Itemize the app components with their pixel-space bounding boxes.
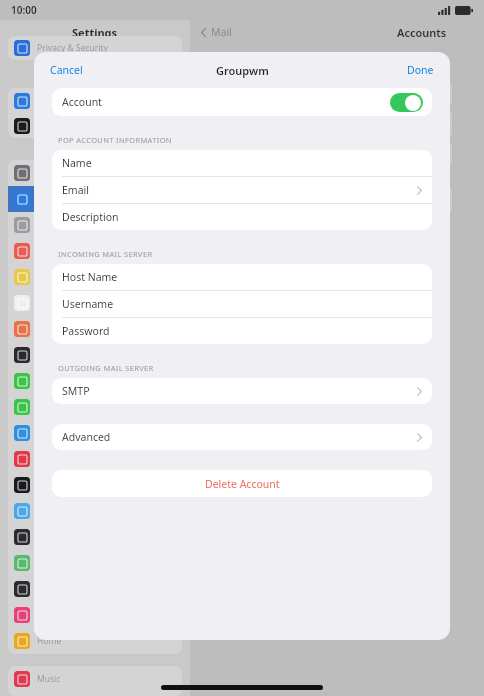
button[interactable]: Passwords [8, 160, 182, 186]
button[interactable]: Email [52, 177, 432, 203]
staticText: Settings [72, 25, 118, 40]
button[interactable]: Advanced [52, 424, 432, 450]
button[interactable]: App Store [8, 88, 182, 114]
button[interactable]: Back to Mail [201, 25, 232, 39]
button[interactable]: Calendar [8, 238, 182, 264]
button[interactable]: Name [52, 150, 432, 176]
button[interactable]: Maps [8, 550, 182, 576]
staticText: 10:00 [11, 3, 37, 17]
button[interactable]: Delete Account [52, 470, 432, 497]
button[interactable]: Stocks [8, 472, 182, 498]
staticText: Mail [211, 25, 232, 39]
staticText: Privacy & Security [37, 42, 108, 54]
button[interactable]: Account row [200, 110, 452, 138]
staticText: Reminders [37, 297, 81, 309]
staticText: Username [62, 297, 114, 311]
staticText: Groupwm [216, 63, 269, 78]
staticText: Messages [37, 401, 77, 413]
staticText: Accounts [397, 25, 447, 40]
staticText: Notes [37, 271, 61, 283]
button[interactable]: Safari [8, 420, 182, 446]
staticText: Stocks [37, 479, 63, 491]
staticText: POP ACCOUNT INFORMATION [58, 135, 172, 145]
button[interactable]: Account row [200, 80, 452, 108]
staticText: Freeform [37, 323, 74, 335]
staticText: Home [37, 635, 62, 647]
staticText: Phone [37, 375, 63, 387]
button[interactable]: SMTP [52, 378, 432, 404]
button[interactable]: Notes [8, 264, 182, 290]
button[interactable]: Contacts [8, 212, 182, 238]
button[interactable]: Shortcuts [8, 576, 182, 602]
button[interactable]: Voice Memos [8, 342, 182, 368]
staticText: Description [62, 210, 119, 224]
button[interactable]: Username [52, 291, 432, 317]
staticText: Safari [37, 427, 60, 439]
staticText: Music [37, 673, 61, 685]
staticText: Mail [37, 193, 54, 205]
button[interactable]: Weather [8, 498, 182, 524]
button[interactable]: Reminders [8, 290, 182, 316]
button[interactable]: Done [401, 58, 440, 82]
button[interactable]: Music [8, 666, 182, 692]
button[interactable]: Privacy & Security [8, 36, 182, 60]
staticText: Host Name [62, 270, 118, 284]
staticText: Delete Account [205, 477, 280, 491]
button[interactable]: Home [8, 628, 182, 654]
button[interactable]: Account row [200, 186, 452, 214]
staticText: Advanced [62, 430, 111, 444]
button[interactable]: Messages [8, 394, 182, 420]
button[interactable]: Mail [8, 186, 182, 212]
button[interactable]: Translate [8, 524, 182, 550]
button[interactable]: Cancel [44, 58, 89, 82]
button[interactable]: Password [52, 318, 432, 344]
button[interactable]: Wallet [8, 114, 182, 138]
staticText: Name [62, 156, 92, 170]
staticText: Account [62, 95, 102, 109]
staticText: INCOMING MAIL SERVER [58, 249, 153, 259]
staticText: Email [62, 183, 89, 197]
button[interactable]: Freeform [8, 316, 182, 342]
staticText: Calendar [37, 245, 73, 257]
staticText: SMTP [62, 384, 90, 398]
button[interactable]: Account row [200, 140, 452, 168]
staticText: Password [62, 324, 110, 338]
button[interactable]: Account [52, 88, 432, 116]
staticText: OUTGOING MAIL SERVER [58, 363, 154, 373]
staticText: Done [407, 63, 434, 77]
button[interactable]: Host Name [52, 264, 432, 290]
staticText: Cancel [50, 63, 83, 77]
button[interactable]: Account toggle, on [390, 93, 423, 112]
button[interactable]: News [8, 446, 182, 472]
staticText: Contacts [37, 219, 72, 231]
button[interactable]: Phone [8, 368, 182, 394]
button[interactable]: Health [8, 602, 182, 628]
button[interactable]: Description [52, 204, 432, 230]
staticText: Passwords [37, 167, 80, 179]
staticText: App Store [37, 95, 77, 107]
